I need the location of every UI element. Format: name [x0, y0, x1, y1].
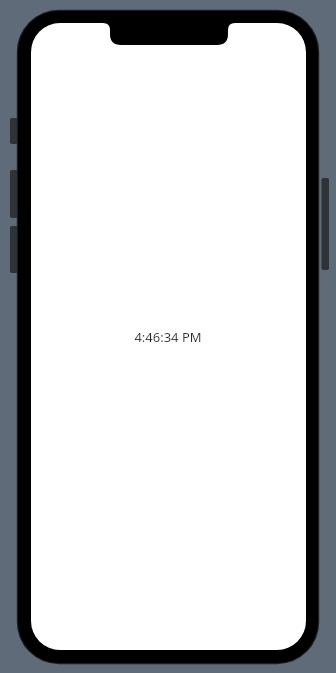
- staticText: 4:46:34 PM: [134, 328, 202, 346]
